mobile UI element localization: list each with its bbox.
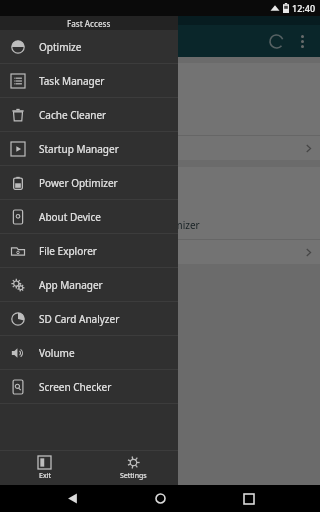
staticText: Task Manager <box>39 74 105 88</box>
button[interactable]: More options <box>290 29 314 53</box>
staticText: Optimize <box>39 40 82 54</box>
button[interactable]: Task Manager <box>0 64 178 97</box>
staticText: App Manager <box>39 278 103 292</box>
button[interactable]: File Explorer <box>0 234 178 267</box>
button[interactable]: Settings <box>89 451 178 485</box>
staticText: SD Card Analyzer <box>39 312 120 326</box>
staticText: 12:40 <box>292 2 316 14</box>
button[interactable]: Home <box>143 485 177 512</box>
button[interactable]: App Manager <box>0 268 178 301</box>
button[interactable]: Exit <box>0 451 89 485</box>
staticText: Volume <box>39 346 75 360</box>
staticText: Settings <box>120 471 147 481</box>
button[interactable]: Power Optimizer <box>0 167 320 264</box>
button[interactable]: SD Card Analyzer <box>0 302 178 335</box>
staticText: Cache Cleaner <box>39 108 107 122</box>
button[interactable]: About Device <box>0 200 178 233</box>
staticText: About Device <box>39 210 101 224</box>
button[interactable]: Volume <box>0 336 178 369</box>
button[interactable]: Refresh <box>262 27 290 55</box>
button[interactable]: Cache Cleaner <box>0 98 178 131</box>
staticText: Cache Size：6.06MB <box>8 142 89 154</box>
staticText: Startup Manager <box>39 142 119 156</box>
button[interactable]: Screen Checker <box>0 370 178 403</box>
button[interactable]: Clean <box>0 63 320 160</box>
staticText: Power Optimizer <box>39 176 118 190</box>
staticText: Power Optimizer <box>121 218 200 232</box>
staticText: Exit <box>39 471 51 481</box>
staticText: File Explorer <box>39 244 97 258</box>
staticText: Screen Checker <box>39 380 112 394</box>
staticText: To be optimized：2 item(s) <box>8 246 115 258</box>
button[interactable]: Startup Manager <box>0 132 178 165</box>
staticText: Fast Access <box>67 18 111 29</box>
button[interactable]: Power Optimizer <box>0 166 178 199</box>
button[interactable]: Back <box>55 485 89 512</box>
button[interactable]: Recent apps <box>232 485 266 512</box>
button[interactable]: Optimize <box>0 30 178 63</box>
